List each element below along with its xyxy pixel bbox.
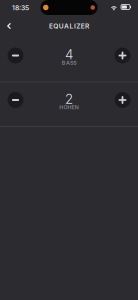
staticText: HÖHEN xyxy=(59,104,79,111)
staticText: 4 xyxy=(65,46,73,63)
staticText: BASS xyxy=(62,60,76,66)
button[interactable]: Increase xyxy=(114,47,130,63)
staticText: 18:35 xyxy=(12,4,29,12)
button[interactable]: Back xyxy=(1,18,17,34)
staticText: EQUALIZER xyxy=(49,22,89,30)
button[interactable]: Decrease xyxy=(7,92,23,108)
staticText: 2 xyxy=(65,91,73,107)
button[interactable]: Increase xyxy=(114,92,130,108)
button[interactable]: Decrease xyxy=(7,47,23,63)
